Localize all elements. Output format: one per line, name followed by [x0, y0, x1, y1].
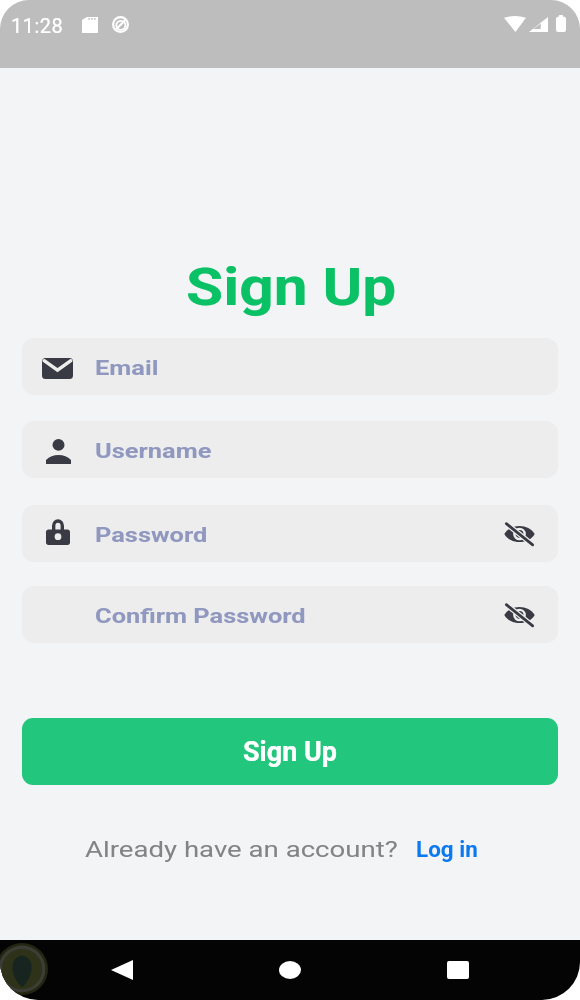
staticText: Already have an account? [85, 837, 398, 863]
button[interactable]: Confirm Password [22, 586, 558, 643]
staticText: Email [95, 356, 159, 381]
button[interactable]: Toggle password visibility [493, 589, 545, 641]
staticText: Sign Up [243, 736, 338, 768]
button[interactable]: Email [22, 338, 558, 395]
staticText: Log in [416, 837, 478, 863]
staticText: 11:28 [11, 14, 64, 37]
button[interactable]: Recent apps [374, 940, 542, 1000]
button[interactable]: Home [206, 940, 374, 1000]
staticText: Confirm Password [95, 604, 307, 629]
staticText: Password [95, 523, 207, 548]
staticText: Sign Up [186, 258, 397, 318]
button[interactable]: Username [22, 421, 558, 478]
staticText: Username [95, 439, 212, 464]
button[interactable]: Log in [410, 833, 484, 867]
button[interactable]: Toggle password visibility [493, 508, 545, 560]
button[interactable]: Password [22, 505, 558, 562]
button[interactable]: Back [38, 940, 206, 1000]
button[interactable]: Sign Up [22, 718, 558, 785]
